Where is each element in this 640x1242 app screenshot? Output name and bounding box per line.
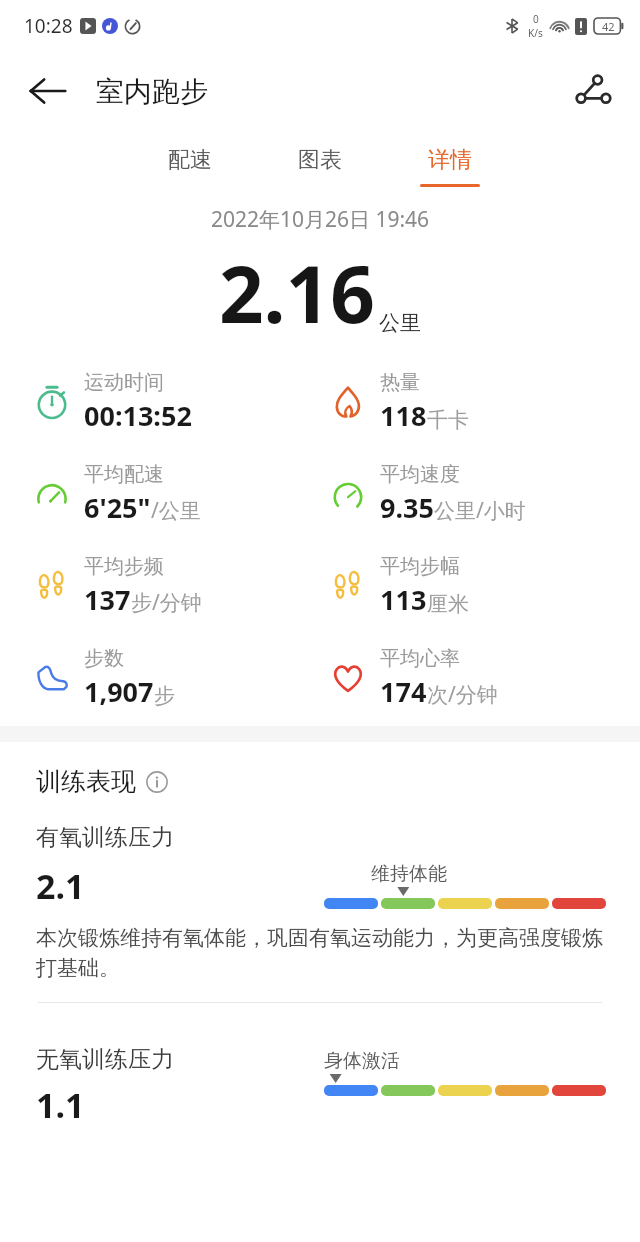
staticText: 平均心率 <box>380 646 460 671</box>
staticText: 118 <box>380 397 427 434</box>
staticText: 维持体能 <box>371 862 447 886</box>
other: Info <box>146 771 168 793</box>
staticText: 113 <box>380 581 427 618</box>
staticText: 6'25" <box>84 489 151 526</box>
button[interactable]: 图表 <box>284 142 356 191</box>
staticText: 次/分钟 <box>427 680 498 709</box>
staticText: 本次锻炼维持有氧体能，巩固有氧运动能力，为更高强度锻炼 打基础。 <box>36 925 603 982</box>
button[interactable]: Share <box>570 68 616 114</box>
staticText: 训练表现 <box>36 766 136 797</box>
button[interactable]: 详情 <box>414 142 486 191</box>
staticText: 厘米 <box>427 591 469 617</box>
staticText: 平均配速 <box>84 462 164 487</box>
staticText: 身体激活 <box>324 1049 400 1073</box>
staticText: 2022年10月26日 19:46 <box>0 205 640 234</box>
staticText: 热量 <box>380 370 420 395</box>
staticText: 平均步幅 <box>380 554 460 579</box>
staticText: 2.16 <box>219 240 375 346</box>
staticText: K/s <box>528 26 543 40</box>
staticText: 1,907 <box>84 673 154 710</box>
staticText: 有氧训练压力 <box>36 823 174 852</box>
staticText: 详情 <box>428 146 472 174</box>
staticText: /公里 <box>151 496 201 525</box>
button[interactable]: 热量 <box>328 370 640 434</box>
staticText: 公里 <box>379 310 421 336</box>
button[interactable]: 步数 <box>32 646 320 710</box>
staticText: 2.1 <box>36 863 85 909</box>
staticText: 9.35 <box>380 489 434 526</box>
staticText: 步/分钟 <box>131 588 202 617</box>
staticText: 室内跑步 <box>96 74 208 109</box>
staticText: 运动时间 <box>84 370 164 395</box>
staticText: 公里/小时 <box>434 496 526 525</box>
staticText: 10:28 <box>24 13 73 39</box>
button[interactable]: 配速 <box>154 142 226 191</box>
staticText: 千卡 <box>427 407 469 433</box>
staticText: 图表 <box>298 146 342 174</box>
button[interactable]: 平均速度 <box>328 462 640 526</box>
staticText: 174 <box>380 673 427 710</box>
staticText: 步数 <box>84 646 124 671</box>
staticText: 配速 <box>168 146 212 174</box>
button[interactable]: 平均步频 <box>32 554 320 618</box>
staticText: 137 <box>84 581 131 618</box>
staticText: 平均速度 <box>380 462 460 487</box>
button[interactable]: 平均步幅 <box>328 554 640 618</box>
button[interactable]: Back <box>24 67 72 115</box>
button[interactable]: 运动时间 <box>32 370 320 434</box>
staticText: 42 <box>602 19 615 34</box>
button[interactable]: 平均心率 <box>328 646 640 710</box>
staticText: 步 <box>154 683 175 709</box>
staticText: 平均步频 <box>84 554 164 579</box>
button[interactable]: 平均配速 <box>32 462 320 526</box>
button[interactable]: 训练表现 <box>36 766 168 797</box>
staticText: 无氧训练压力 <box>36 1045 174 1074</box>
staticText: 0 <box>533 12 539 26</box>
staticText: 00:13:52 <box>84 397 192 434</box>
staticText: 1.1 <box>36 1082 85 1128</box>
